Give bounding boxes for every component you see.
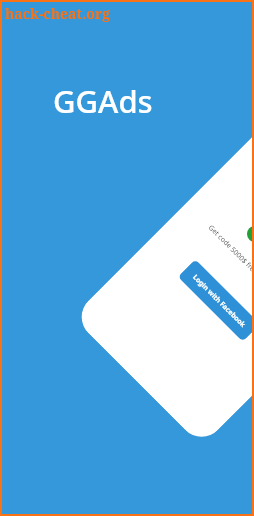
staticText: hack-cheat.org bbox=[5, 4, 111, 23]
staticText: Login with Facebook bbox=[191, 273, 248, 329]
staticText: GGAds bbox=[53, 80, 153, 122]
staticText: Get code 5000$ free in app bbox=[206, 223, 252, 315]
button[interactable]: Login with Facebook bbox=[178, 259, 252, 342]
